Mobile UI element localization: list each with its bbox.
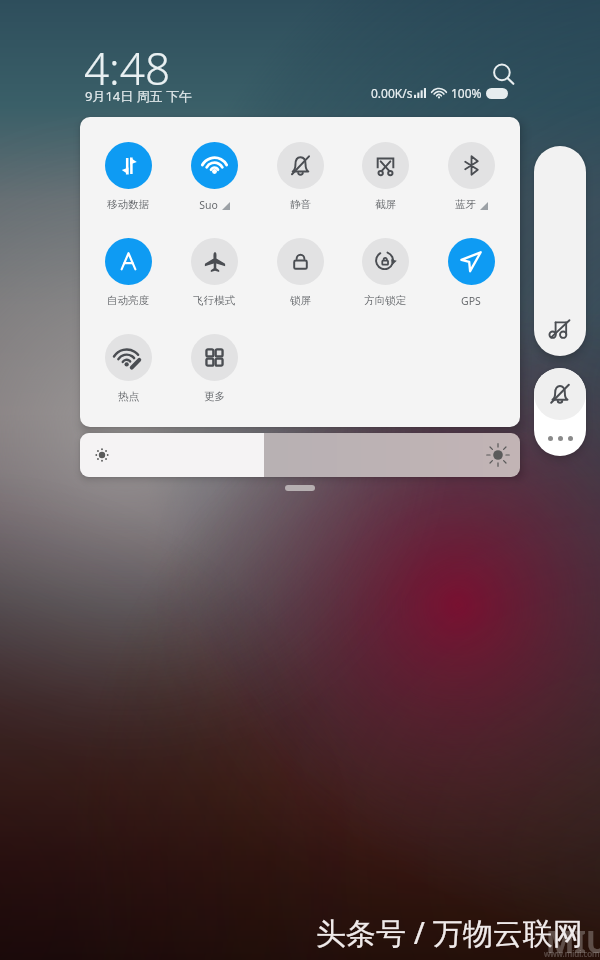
button[interactable]: Silent mode xyxy=(534,368,586,420)
staticText: GPS xyxy=(461,294,481,308)
button[interactable]: 移动数据 xyxy=(86,138,170,211)
button[interactable]: 飞行模式 xyxy=(172,234,256,307)
button[interactable]: 热点 xyxy=(86,330,170,403)
staticText: 更多 xyxy=(204,390,225,403)
staticText: 热点 xyxy=(118,390,139,403)
staticText: 截屏 xyxy=(375,198,396,211)
button[interactable]: 锁屏 xyxy=(258,234,342,307)
staticText: www.miui.com xyxy=(544,948,600,959)
staticText: MIUI xyxy=(546,921,600,960)
button[interactable]: 更多 xyxy=(172,330,256,403)
staticText: 飞行模式 xyxy=(193,294,235,307)
staticText: 蓝牙 xyxy=(455,198,476,211)
button[interactable]: Suo xyxy=(172,138,256,212)
button[interactable]: 截屏 xyxy=(343,138,427,211)
button[interactable]: Search xyxy=(487,58,521,92)
staticText: 锁屏 xyxy=(290,294,311,307)
staticText: Suo xyxy=(199,198,218,212)
staticText: 9月14日 周五 下午 xyxy=(85,87,193,105)
button[interactable]: 静音 xyxy=(258,138,342,211)
staticText: 自动亮度 xyxy=(107,294,149,307)
staticText: 100% xyxy=(451,85,482,101)
button[interactable] xyxy=(80,433,520,477)
button[interactable]: More xyxy=(534,420,586,456)
staticText: 4:48 xyxy=(84,38,171,98)
button[interactable]: 方向锁定 xyxy=(343,234,427,307)
button[interactable]: Volume xyxy=(534,146,586,356)
staticText: 移动数据 xyxy=(107,198,149,211)
staticText: 0.00K/s xyxy=(371,85,413,101)
staticText: 方向锁定 xyxy=(364,294,406,307)
button[interactable]: 自动亮度 xyxy=(86,234,170,307)
staticText: 头条号 / 万物云联网 xyxy=(316,912,583,953)
staticText: 静音 xyxy=(290,198,311,211)
button[interactable]: GPS xyxy=(429,234,513,308)
button[interactable]: 蓝牙 xyxy=(429,138,513,211)
